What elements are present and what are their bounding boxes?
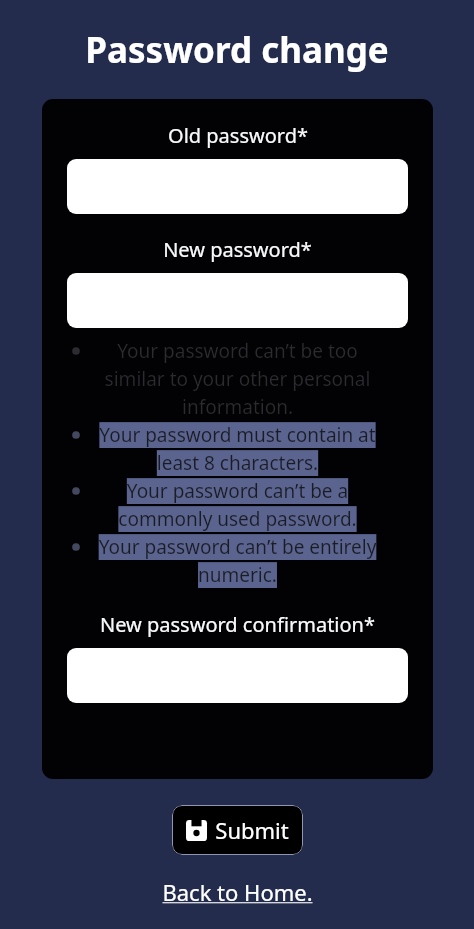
button[interactable] (67, 273, 408, 328)
staticText: Back to Home. (162, 877, 313, 907)
staticText: Your password can’t be a (67, 478, 408, 504)
staticText: Old password* (168, 122, 308, 149)
staticText: New password confirmation* (100, 611, 375, 638)
staticText: numeric. (67, 562, 408, 588)
staticText: Password change (85, 26, 389, 74)
staticText: Your password must contain at (67, 422, 408, 448)
staticText: least 8 characters. (67, 450, 408, 476)
staticText: similar to your other personal (67, 366, 408, 392)
button[interactable] (67, 159, 408, 214)
staticText: Submit (215, 815, 289, 845)
staticText: New password* (163, 236, 312, 263)
staticText: commonly used password. (67, 506, 408, 532)
button[interactable] (67, 648, 408, 703)
staticText: Your password can’t be entirely (67, 534, 408, 560)
button[interactable]: Submit (172, 805, 303, 855)
staticText: Your password can’t be too (67, 338, 408, 364)
button[interactable]: Back to Home. (156, 875, 319, 909)
staticText: information. (67, 394, 408, 420)
